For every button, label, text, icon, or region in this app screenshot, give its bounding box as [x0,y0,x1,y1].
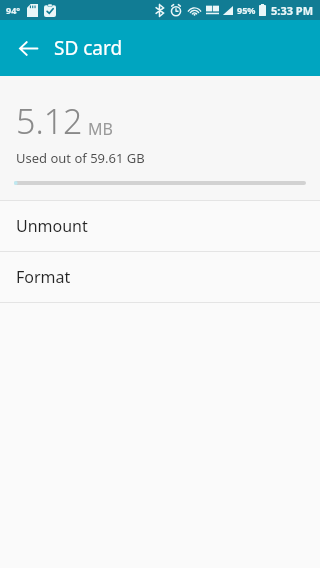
staticText: SD card [54,35,123,61]
button[interactable]: Unmount [0,201,320,251]
button[interactable]: Format [0,252,320,302]
staticText: Unmount [16,215,88,237]
staticText: 5:33 PM [271,3,314,18]
staticText: 5.12 [16,98,83,144]
staticText: MB [88,118,113,140]
staticText: 94° [6,4,21,16]
staticText: Format [16,266,71,288]
staticText: 95% [237,4,256,16]
staticText: Used out of 59.61 GB [16,149,145,167]
button[interactable]: Back [8,28,48,68]
